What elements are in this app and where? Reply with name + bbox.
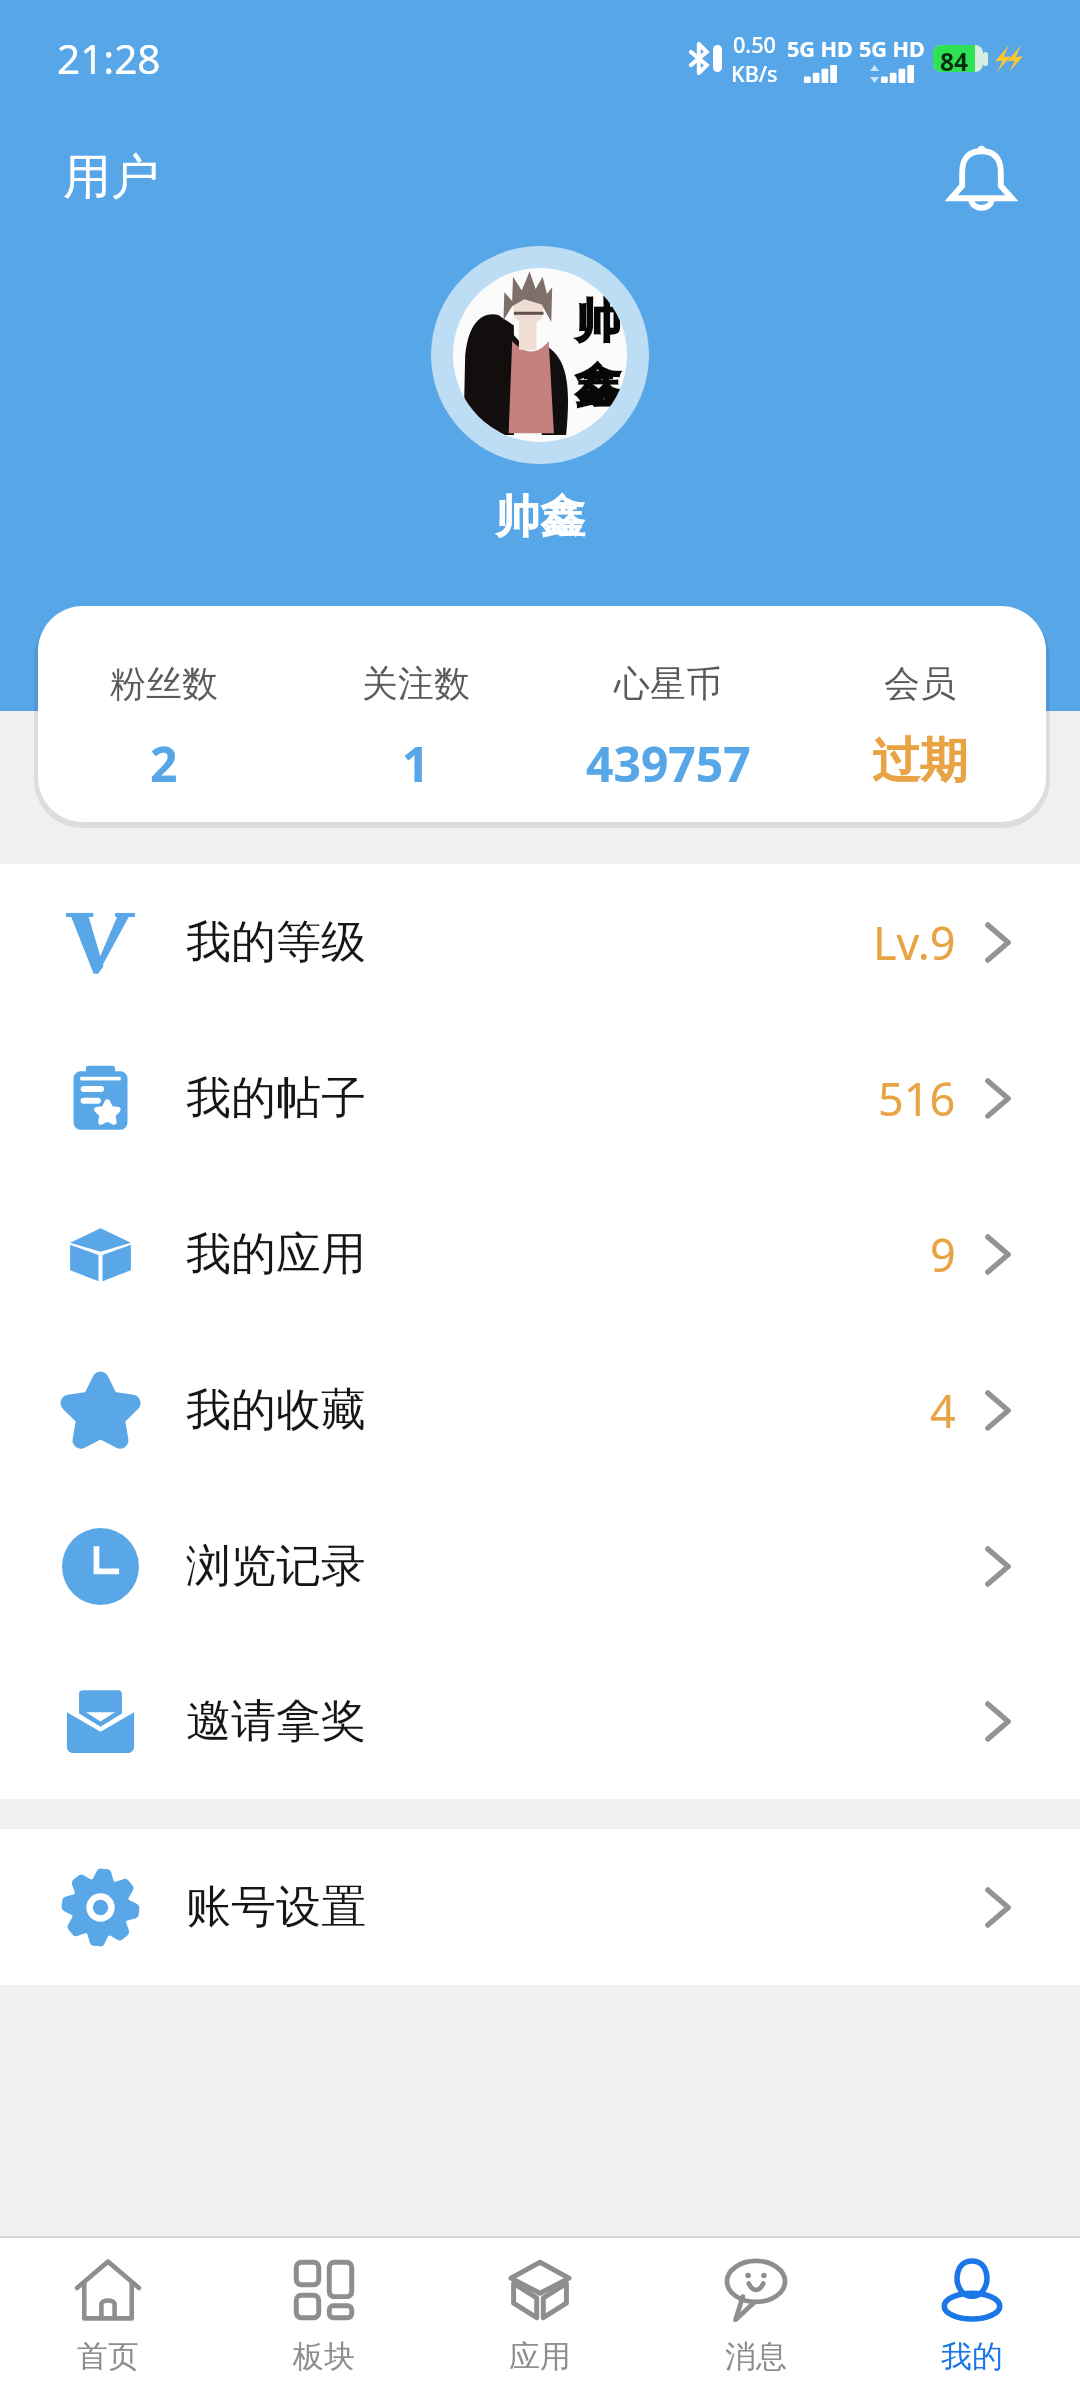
staticText: 4 xyxy=(930,1380,956,1441)
staticText: 439757 xyxy=(586,731,751,796)
staticText: 关注数 xyxy=(362,661,470,706)
staticText: 会员 xyxy=(884,661,956,706)
staticText: 我的收藏 xyxy=(186,1382,366,1439)
staticText: 2 xyxy=(150,731,178,796)
button[interactable]: 我的应用 xyxy=(0,1176,1080,1332)
button[interactable]: 我的帖子 xyxy=(0,1020,1080,1176)
staticText: 我的帖子 xyxy=(186,1070,366,1127)
button[interactable]: 应用 xyxy=(432,2238,648,2388)
button[interactable]: 粉丝数 xyxy=(38,606,290,822)
staticText: 1 xyxy=(402,731,430,796)
button[interactable]: 邀请拿奖 xyxy=(0,1644,1080,1799)
staticText: Lv.9 xyxy=(873,912,956,973)
button[interactable]: 我的等级 xyxy=(0,864,1080,1020)
button[interactable]: 浏览记录 xyxy=(0,1488,1080,1644)
staticText: 21:28 xyxy=(57,31,161,86)
button[interactable]: 首页 xyxy=(0,2238,216,2388)
staticText: 心星币 xyxy=(614,661,722,706)
staticText: 应用 xyxy=(509,2337,571,2376)
staticText: 鑫 xyxy=(575,357,622,416)
staticText: 帅 xyxy=(575,292,622,351)
staticText: 帅鑫 xyxy=(495,489,585,546)
staticText: 首页 xyxy=(77,2337,139,2376)
button[interactable]: 我的 xyxy=(864,2238,1080,2388)
staticText: 我的 xyxy=(941,2337,1003,2376)
staticText: 我的应用 xyxy=(186,1226,366,1283)
staticText: 消息 xyxy=(725,2337,787,2376)
button[interactable]: 心星币 xyxy=(542,606,794,822)
staticText: 84 xyxy=(940,45,969,72)
staticText: 粉丝数 xyxy=(110,661,218,706)
button[interactable]: 我的收藏 xyxy=(0,1332,1080,1488)
button[interactable]: Notifications xyxy=(936,132,1026,222)
staticText: KB/s xyxy=(731,59,778,88)
staticText: 用户 xyxy=(63,147,159,207)
staticText: 5G HD xyxy=(787,34,853,63)
staticText: 我的等级 xyxy=(186,914,366,971)
button[interactable]: 会员 xyxy=(794,606,1046,822)
button[interactable]: 消息 xyxy=(648,2238,864,2388)
staticText: 5G HD xyxy=(859,34,925,63)
staticText: 邀请拿奖 xyxy=(186,1693,366,1750)
staticText: 过期 xyxy=(872,731,968,791)
staticText: 板块 xyxy=(293,2337,355,2376)
staticText: 9 xyxy=(930,1224,956,1285)
button[interactable]: 板块 xyxy=(216,2238,432,2388)
staticText: 账号设置 xyxy=(186,1879,366,1936)
staticText: 0.50 xyxy=(733,30,776,59)
button[interactable]: 关注数 xyxy=(290,606,542,822)
button[interactable]: 账号设置 xyxy=(0,1829,1080,1985)
staticText: 浏览记录 xyxy=(186,1538,366,1595)
button[interactable]: Profile avatar xyxy=(431,246,649,464)
staticText: 516 xyxy=(878,1068,956,1129)
